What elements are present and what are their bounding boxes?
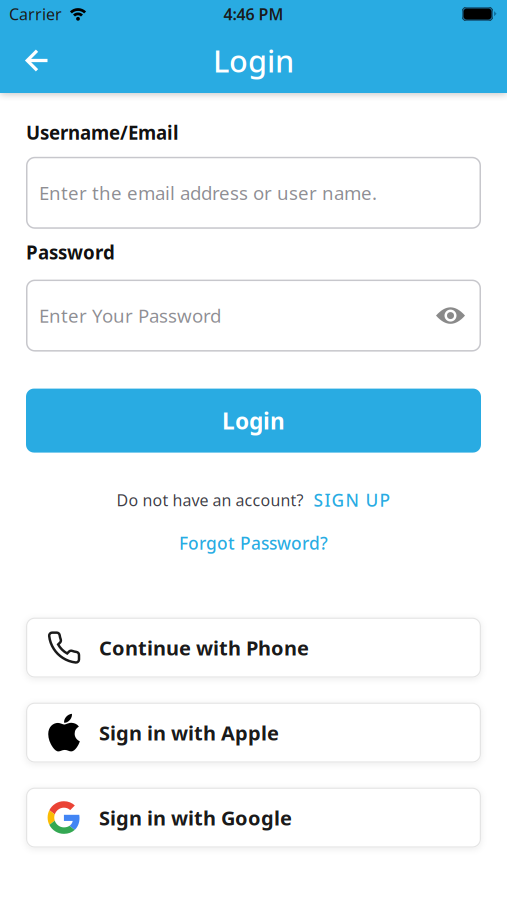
staticText: Enter Your Password xyxy=(39,303,221,328)
staticText: Continue with Phone xyxy=(99,634,309,661)
button[interactable]: Show password xyxy=(436,307,467,325)
staticText: Enter the email address or user name. xyxy=(39,180,377,205)
staticText: SIGN UP xyxy=(313,489,390,512)
button[interactable]: Login xyxy=(26,389,481,453)
button[interactable]: Sign in with Apple xyxy=(26,703,481,763)
staticText: Sign in with Google xyxy=(99,804,292,831)
staticText: Username/Email xyxy=(26,120,179,145)
button[interactable]: Forgot Password? xyxy=(179,532,328,555)
staticText: Sign in with Apple xyxy=(99,719,279,746)
staticText: Forgot Password? xyxy=(179,532,328,555)
button[interactable]: Back xyxy=(0,30,48,90)
staticText: Do not have an account? xyxy=(116,489,303,511)
button[interactable]: Sign in with Google xyxy=(26,788,481,848)
staticText: Carrier xyxy=(9,3,62,25)
button[interactable]: Continue with Phone xyxy=(26,618,481,678)
staticText: Login xyxy=(222,405,285,436)
staticText: Password xyxy=(26,240,115,265)
staticText: 4:46 PM xyxy=(223,3,283,25)
button[interactable]: SIGN UP xyxy=(313,489,390,512)
staticText: Login xyxy=(213,40,294,81)
